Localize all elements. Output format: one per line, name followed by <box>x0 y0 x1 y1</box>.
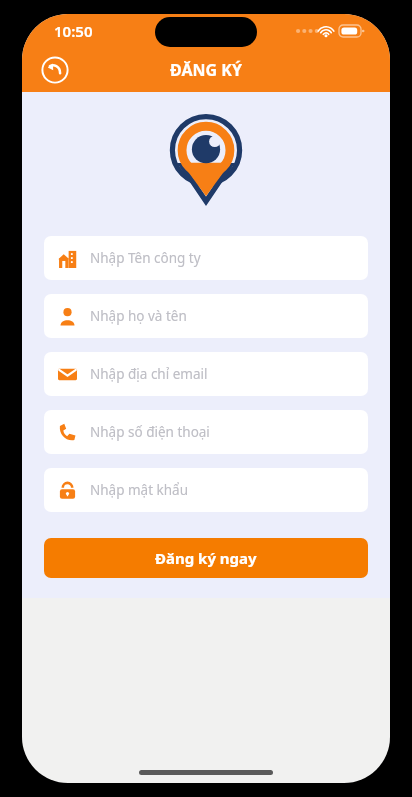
button[interactable]: Nhập mật khẩu <box>44 468 368 512</box>
staticText: Đăng ký ngay <box>155 548 257 568</box>
button[interactable]: Back <box>40 55 70 85</box>
staticText: Nhập số điện thoại <box>90 423 210 441</box>
staticText: Nhập Tên công ty <box>90 249 201 267</box>
staticText: Nhập họ và tên <box>90 307 187 325</box>
button[interactable]: Nhập Tên công ty <box>44 236 368 280</box>
staticText: 10:50 <box>54 21 93 41</box>
button[interactable]: Nhập số điện thoại <box>44 410 368 454</box>
staticText: Nhập địa chỉ email <box>90 365 208 383</box>
staticText: Nhập mật khẩu <box>90 481 189 499</box>
staticText: ĐĂNG KÝ <box>170 59 242 81</box>
button[interactable]: Nhập họ và tên <box>44 294 368 338</box>
button[interactable]: Đăng ký ngay <box>44 538 368 578</box>
button[interactable]: Nhập địa chỉ email <box>44 352 368 396</box>
